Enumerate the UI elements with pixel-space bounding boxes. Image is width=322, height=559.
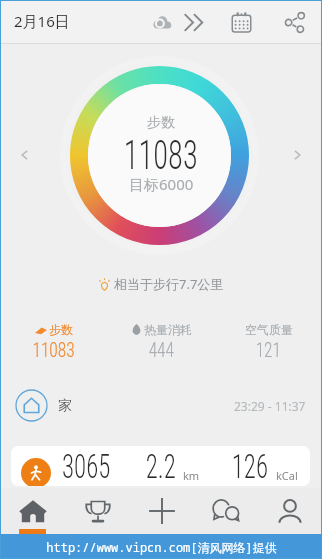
staticText: 相当于步行7.7公里 bbox=[114, 275, 224, 293]
button[interactable]: Share bbox=[275, 3, 313, 41]
staticText: 步数 bbox=[147, 114, 175, 132]
button[interactable]: Forward bbox=[176, 5, 210, 39]
staticText: km bbox=[183, 468, 200, 483]
staticText: 23:29 - 11:37 bbox=[234, 398, 306, 414]
button[interactable]: Add bbox=[130, 488, 194, 534]
staticText: 11083 bbox=[124, 132, 198, 179]
staticText: 目标6000 bbox=[129, 174, 194, 194]
staticText: 3065 bbox=[62, 446, 111, 486]
staticText: kCal bbox=[276, 468, 298, 483]
staticText: http://www.vipcn.com[清风网络]提供 bbox=[46, 539, 277, 555]
button[interactable]: 热量消耗 bbox=[108, 320, 215, 363]
staticText: 家 bbox=[58, 397, 72, 415]
staticText: 121 bbox=[256, 338, 281, 363]
staticText: 步数 bbox=[49, 322, 73, 337]
button[interactable]: 3065 bbox=[11, 446, 310, 486]
staticText: 2.2 bbox=[146, 446, 176, 486]
staticText: 空气质量 bbox=[245, 322, 293, 337]
button[interactable]: 步数 bbox=[0, 320, 108, 363]
button[interactable]: Achievements bbox=[65, 488, 130, 534]
button[interactable]: Messages bbox=[194, 488, 258, 534]
button[interactable]: Sync bbox=[143, 3, 181, 41]
staticText: 126 bbox=[232, 446, 268, 486]
button[interactable]: Profile bbox=[258, 488, 322, 534]
button[interactable]: 家 bbox=[0, 382, 322, 429]
staticText: 11083 bbox=[32, 338, 76, 363]
button[interactable]: 空气质量 bbox=[215, 320, 322, 363]
button[interactable]: Home bbox=[0, 488, 65, 534]
button[interactable]: Previous bbox=[12, 142, 38, 168]
staticText: 2月16日 bbox=[14, 11, 70, 31]
staticText: 热量消耗 bbox=[144, 322, 192, 337]
button[interactable]: Calendar bbox=[222, 3, 260, 41]
staticText: 444 bbox=[149, 338, 174, 363]
button[interactable]: Next bbox=[284, 142, 310, 168]
